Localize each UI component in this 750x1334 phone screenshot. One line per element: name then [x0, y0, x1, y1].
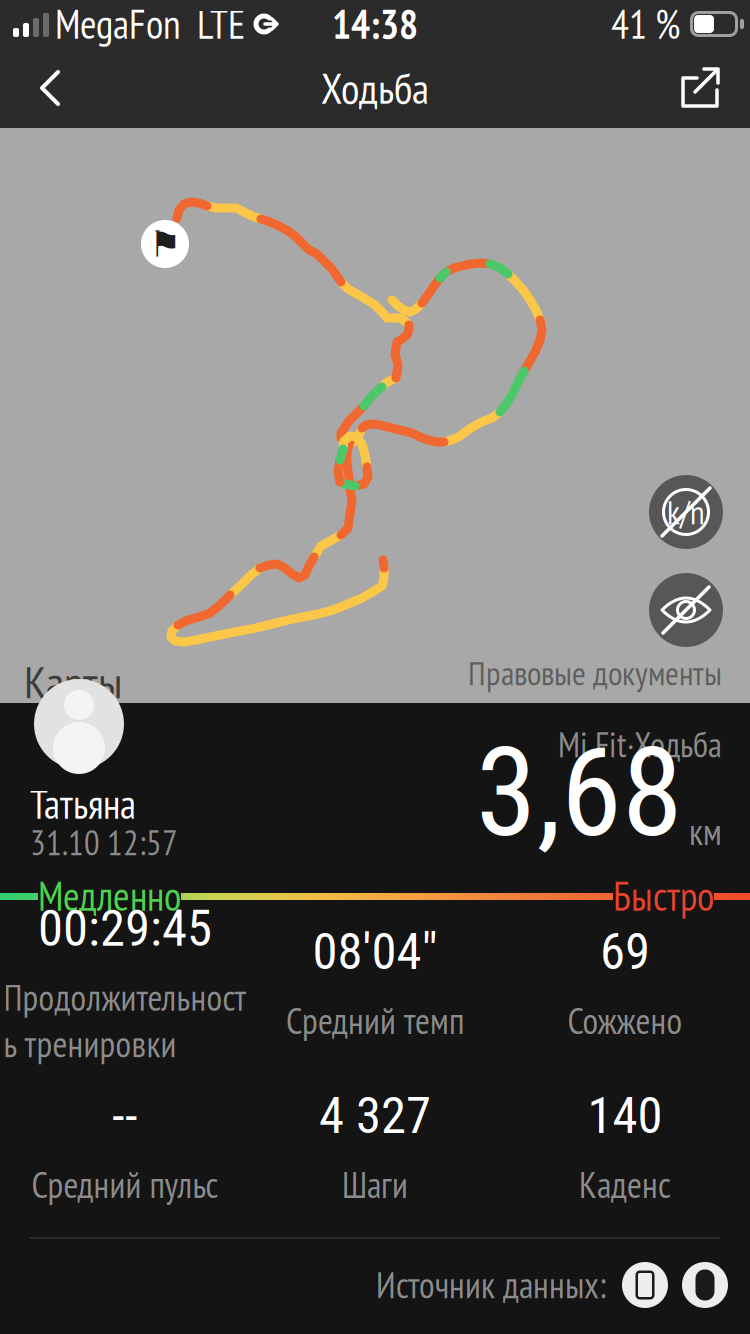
- staticText: ⚑: [149, 223, 181, 265]
- button[interactable]: Темп: [649, 475, 723, 549]
- staticText: Mi Fit·Ходьба: [558, 722, 722, 767]
- staticText: Медленно: [38, 870, 181, 922]
- staticText: 4 327: [319, 1086, 431, 1145]
- staticText: LTE: [197, 0, 245, 50]
- staticText: MegaFon: [55, 0, 181, 50]
- staticText: Сожжено: [567, 997, 682, 1044]
- button[interactable]: Скрыть: [649, 573, 723, 647]
- staticText: Ходьба: [321, 60, 429, 116]
- staticText: Средний пульс: [31, 1161, 218, 1208]
- staticText: Правовые документы: [468, 651, 722, 694]
- staticText: Шаги: [342, 1161, 408, 1208]
- staticText: Татьяна: [30, 778, 136, 830]
- staticText: 31.10 12:57: [30, 820, 178, 865]
- staticText: км: [689, 808, 722, 855]
- button[interactable]: Назад: [0, 48, 100, 128]
- staticText: Быстро: [613, 870, 714, 922]
- staticText: Источник данных:: [376, 1262, 606, 1308]
- staticText: 140: [587, 1086, 662, 1145]
- button[interactable]: Поделиться: [650, 48, 750, 128]
- staticText: 14:38: [332, 0, 418, 50]
- staticText: --: [112, 1086, 138, 1145]
- button[interactable]: Телефон: [622, 1262, 668, 1308]
- staticText: 69: [600, 922, 650, 981]
- staticText: Карты: [24, 652, 122, 711]
- staticText: Каденс: [579, 1161, 671, 1208]
- button[interactable]: Правовые документы: [468, 651, 722, 694]
- staticText: Продолжительност ь тренировки: [3, 974, 246, 1067]
- staticText: 3,68: [476, 721, 683, 865]
- staticText: 41 %: [611, 0, 680, 50]
- staticText: 00:29:45: [38, 899, 212, 958]
- staticText: Средний темп: [286, 997, 464, 1044]
- staticText: 08'04": [312, 922, 437, 981]
- button[interactable]: Браслет: [682, 1262, 728, 1308]
- staticText: k/n: [667, 490, 705, 533]
